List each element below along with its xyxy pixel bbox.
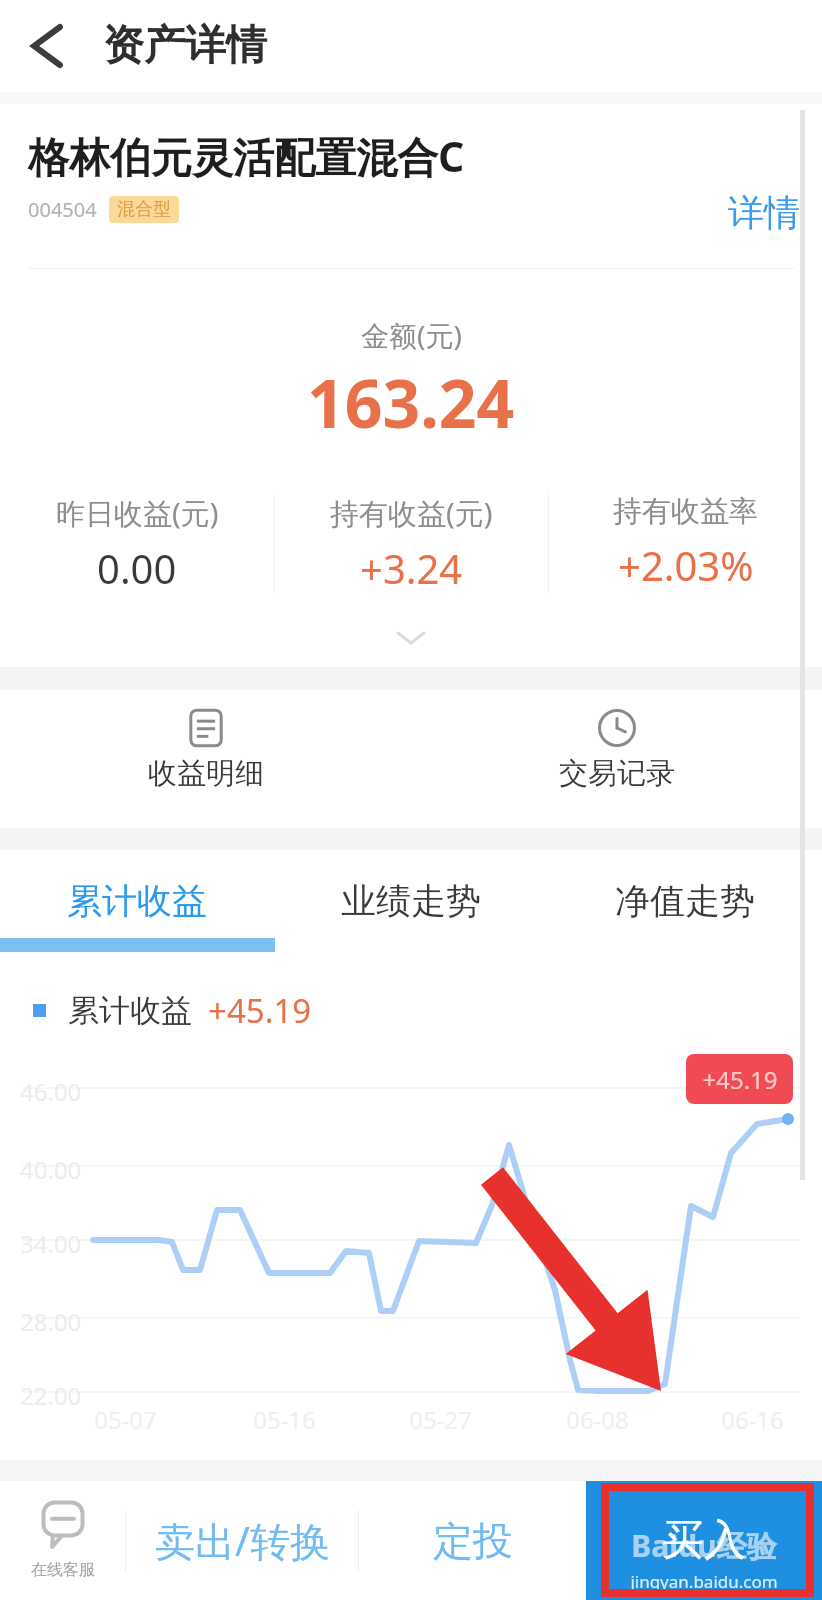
staticText: Baidu经验 bbox=[631, 1525, 777, 1566]
staticText: 05-16 bbox=[253, 1403, 316, 1436]
staticText: 金额(元) bbox=[361, 316, 462, 354]
staticText: 卖出/转换 bbox=[155, 1513, 330, 1568]
staticText: 定投 bbox=[433, 1516, 513, 1566]
staticText: +45.19 bbox=[208, 988, 312, 1033]
button[interactable]: 收益明细 bbox=[0, 690, 411, 828]
staticText: 22.00 bbox=[20, 1379, 82, 1412]
staticText: 持有收益(元) bbox=[330, 493, 493, 533]
button[interactable]: 买入 bbox=[586, 1481, 822, 1600]
staticText: 格林伯元灵活配置混合C bbox=[28, 128, 465, 184]
staticText: 46.00 bbox=[20, 1075, 82, 1108]
staticText: 交易记录 bbox=[559, 755, 675, 792]
staticText: 05-27 bbox=[409, 1403, 472, 1436]
staticText: 业绩走势 bbox=[341, 879, 481, 923]
staticText: +2.03% bbox=[618, 538, 754, 592]
button[interactable]: 净值走势 bbox=[548, 850, 822, 952]
staticText: 买入 bbox=[662, 1514, 746, 1567]
button[interactable]: 交易记录 bbox=[411, 690, 822, 828]
button[interactable]: Back bbox=[12, 11, 82, 81]
staticText: +3.24 bbox=[360, 541, 463, 595]
button[interactable]: 定投 bbox=[359, 1481, 586, 1600]
staticText: 持有收益率 bbox=[613, 493, 758, 530]
staticText: 05-07 bbox=[94, 1403, 157, 1436]
staticText: 06-16 bbox=[721, 1403, 784, 1436]
staticText: 34.00 bbox=[20, 1227, 82, 1260]
staticText: 净值走势 bbox=[615, 879, 755, 923]
button[interactable]: Expand bbox=[387, 625, 435, 651]
staticText: 004504 bbox=[28, 196, 97, 223]
staticText: +45.19 bbox=[702, 1063, 778, 1096]
button[interactable]: 详情 bbox=[728, 190, 800, 235]
staticText: 收益明细 bbox=[148, 755, 264, 792]
staticText: 累计收益 bbox=[67, 879, 207, 923]
button[interactable]: 累计收益 bbox=[0, 850, 274, 952]
staticText: 163.24 bbox=[307, 357, 515, 447]
staticText: 昨日收益(元) bbox=[56, 493, 219, 533]
button[interactable]: 卖出/转换 bbox=[126, 1481, 358, 1600]
staticText: 40.00 bbox=[20, 1153, 82, 1186]
button[interactable]: 在线客服 bbox=[0, 1481, 125, 1600]
staticText: 累计收益 bbox=[68, 991, 192, 1030]
button[interactable]: 业绩走势 bbox=[274, 850, 548, 952]
staticText: 0.00 bbox=[97, 541, 177, 595]
staticText: 28.00 bbox=[20, 1305, 82, 1338]
staticText: 在线客服 bbox=[31, 1560, 95, 1580]
staticText: 06-08 bbox=[566, 1403, 629, 1436]
staticText: jingyan.baidu.com bbox=[630, 1570, 778, 1593]
staticText: 资产详情 bbox=[103, 20, 267, 72]
staticText: 混合型 bbox=[117, 198, 171, 221]
